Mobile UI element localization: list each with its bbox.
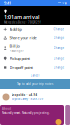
button[interactable]: Add tip <box>0 25 70 33</box>
button[interactable]: Dropoff point <box>0 63 70 72</box>
staticText: Change <box>53 36 64 39</box>
staticText: ••• ᯤ ▮ <box>58 1 66 5</box>
staticText: Pickup point <box>10 56 30 61</box>
button[interactable]: Pickup point <box>0 54 70 63</box>
staticText: Add tip <box>10 27 22 32</box>
button[interactable]: Bill Jo <box>0 42 70 54</box>
staticText: Dropoff point <box>10 65 33 70</box>
staticText: Change <box>53 27 64 31</box>
staticText: Change <box>53 57 64 60</box>
button[interactable]: Leopoldo · ★4.94 <box>0 89 70 105</box>
staticText: 9:41 <box>4 0 11 6</box>
staticText: Share your ride <box>10 35 37 40</box>
button[interactable]: Tap to add your trip notes <box>0 79 70 89</box>
staticText: Toyota Camry · 8LRK109 <box>11 97 43 101</box>
button[interactable]: More offers <box>65 105 70 125</box>
button[interactable]: About <box>0 105 64 125</box>
staticText: Cancel <box>30 74 39 77</box>
staticText: Tap to add your trip notes <box>17 82 53 86</box>
staticText: Bill Jo <box>10 43 20 49</box>
staticText: About <box>2 107 11 110</box>
button[interactable]: Cancel <box>0 72 70 79</box>
staticText: Naturally smart. Naturally projecting. <box>2 111 50 115</box>
staticText: 1:01am arrival <box>4 13 40 21</box>
staticText: Change <box>53 46 64 50</box>
staticText: Mercedes-Benz · 7BQR291 <box>4 21 42 24</box>
staticText: Passenger <box>10 49 24 53</box>
staticText: Change <box>53 66 64 69</box>
button[interactable]: Share your ride <box>0 33 70 42</box>
staticText: Leopoldo · ★4.94 <box>11 93 37 97</box>
